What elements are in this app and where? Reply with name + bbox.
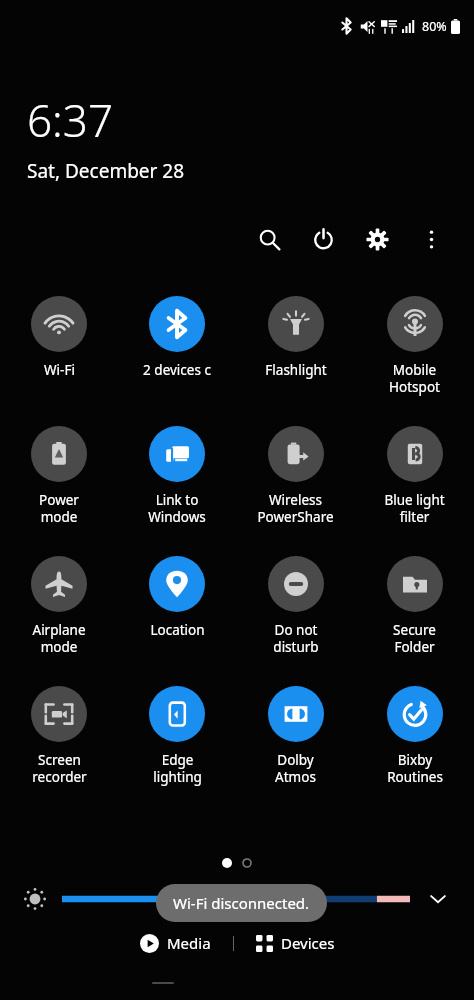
other: Brightness — [22, 886, 48, 912]
button[interactable]: Settings — [360, 222, 394, 256]
staticText: Wi-Fi — [44, 361, 75, 379]
staticText: Edge lighting — [153, 751, 202, 786]
staticText: Location — [150, 621, 205, 639]
button[interactable]: Airplane mode — [0, 544, 118, 674]
button[interactable]: Devices — [250, 929, 341, 957]
button[interactable]: Bixby Routines — [355, 674, 474, 804]
button[interactable]: Mobile Hotspot — [355, 284, 474, 414]
button[interactable]: 2 devices c — [118, 284, 236, 414]
staticText: Media — [167, 933, 211, 953]
staticText: Blue light filter — [384, 491, 445, 526]
staticText: Dolby Atmos — [275, 751, 316, 786]
staticText: Airplane mode — [32, 621, 86, 656]
button[interactable]: Secure Folder — [355, 544, 474, 674]
button[interactable]: Link to Windows — [118, 414, 236, 544]
button[interactable]: Search — [252, 222, 286, 256]
button[interactable]: Blue light filter — [355, 414, 474, 544]
button[interactable]: Dolby Atmos — [236, 674, 355, 804]
button[interactable]: More options — [414, 222, 448, 256]
staticText: Secure Folder — [393, 621, 436, 656]
button[interactable]: Media — [134, 929, 217, 957]
button[interactable]: Flashlight — [236, 284, 355, 414]
button[interactable]: Expand — [424, 885, 452, 913]
staticText: Devices — [281, 933, 335, 953]
staticText: 80% — [422, 18, 447, 35]
staticText: Link to Windows — [148, 491, 206, 526]
staticText: Do not disturb — [273, 621, 319, 656]
staticText: Wireless PowerShare — [257, 491, 334, 526]
staticText: 2 devices c — [143, 361, 211, 379]
staticText: Sat, December 28 — [27, 158, 185, 184]
button[interactable] — [62, 888, 410, 910]
button[interactable]: Power mode — [0, 414, 118, 544]
button[interactable]: Wireless PowerShare — [236, 414, 355, 544]
button[interactable]: Wi-Fi — [0, 284, 118, 414]
staticText: Screen recorder — [32, 751, 87, 786]
button[interactable]: Do not disturb — [236, 544, 355, 674]
button[interactable]: Screen recorder — [0, 674, 118, 804]
staticText: 6:37 — [27, 90, 114, 150]
staticText: Mobile Hotspot — [389, 361, 440, 396]
staticText: Bixby Routines — [387, 751, 443, 786]
button[interactable]: Location — [118, 544, 236, 674]
button[interactable]: Edge lighting — [118, 674, 236, 804]
staticText: Wi-Fi disconnected. — [173, 893, 310, 913]
staticText: Power mode — [39, 491, 79, 526]
button[interactable]: Power — [306, 222, 340, 256]
staticText: Flashlight — [265, 361, 327, 379]
